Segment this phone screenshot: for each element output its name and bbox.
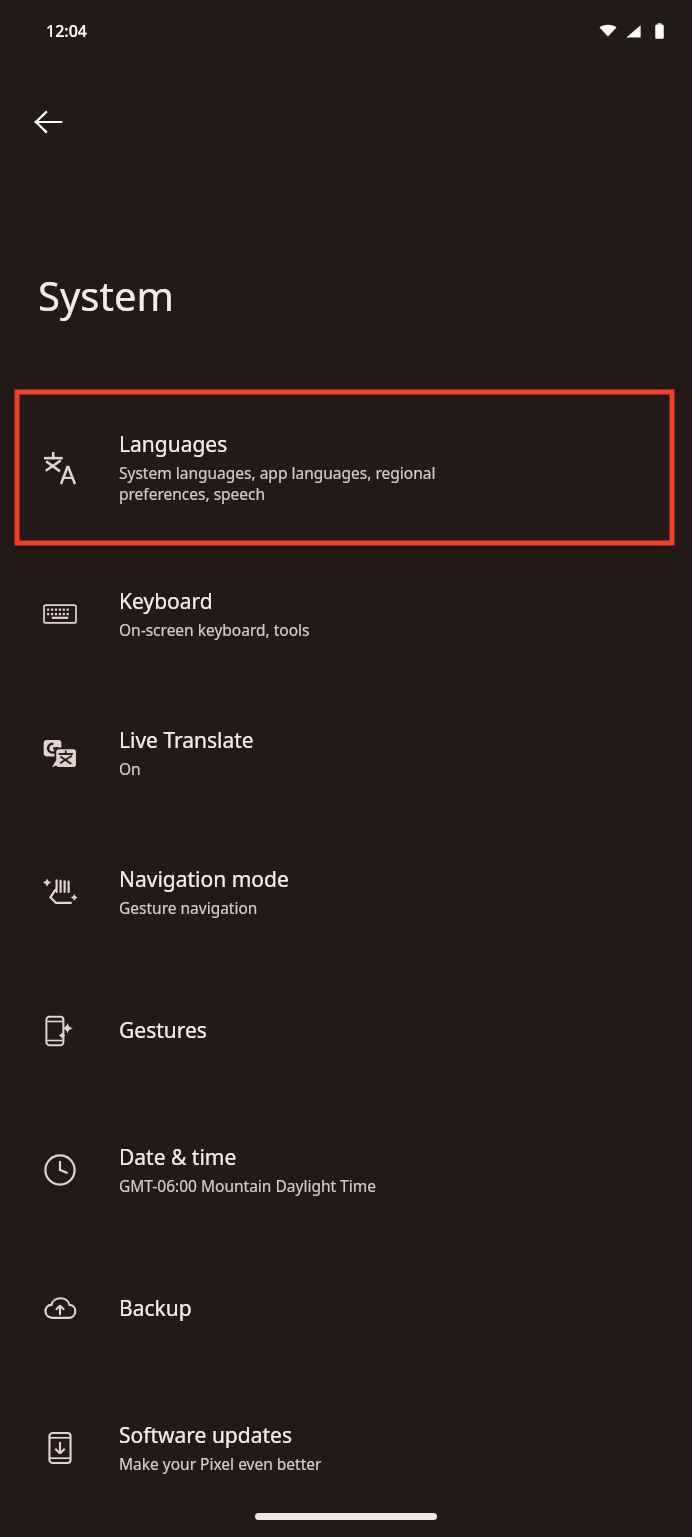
staticText: Navigation mode: [119, 865, 289, 894]
button[interactable]: Rules: [0, 1517, 692, 1537]
button[interactable]: Date & time: [0, 1100, 692, 1239]
staticText: Software updates: [119, 1421, 292, 1450]
staticText: Date & time: [119, 1143, 237, 1172]
staticText: Gestures: [119, 1016, 207, 1045]
button[interactable]: Keyboard: [0, 544, 692, 683]
staticText: 12:04: [46, 20, 87, 42]
staticText: Languages: [119, 430, 228, 459]
staticText: System: [38, 268, 174, 322]
staticText: Backup: [119, 1294, 192, 1323]
staticText: Live Translate: [119, 726, 254, 755]
button[interactable]: Languages: [17, 392, 672, 543]
staticText: Keyboard: [119, 587, 213, 616]
staticText: On-screen keyboard, tools: [119, 619, 310, 640]
button[interactable]: Back: [22, 96, 74, 148]
staticText: System languages, app languages, regiona…: [119, 462, 436, 505]
staticText: GMT-06:00 Mountain Daylight Time: [119, 1175, 376, 1196]
staticText: Gesture navigation: [119, 897, 258, 918]
button[interactable]: Software updates: [0, 1378, 692, 1517]
button[interactable]: Live Translate: [0, 683, 692, 822]
button[interactable]: Backup: [0, 1239, 692, 1378]
button[interactable]: Gestures: [0, 961, 692, 1100]
staticText: On: [119, 758, 141, 779]
staticText: Make your Pixel even better: [119, 1453, 322, 1474]
button[interactable]: Navigation mode: [0, 822, 692, 961]
